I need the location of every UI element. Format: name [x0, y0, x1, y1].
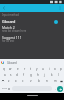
button[interactable]: q — [0, 66, 7, 72]
button[interactable]: u — [40, 66, 46, 72]
staticText: n — [46, 79, 48, 83]
staticText: c — [22, 79, 24, 83]
staticText: . — [55, 87, 56, 91]
staticText: s — [10, 73, 12, 77]
button[interactable]: p — [58, 66, 64, 72]
button[interactable]: l — [55, 72, 62, 78]
button[interactable]: f — [20, 72, 27, 78]
button[interactable]: i — [46, 66, 52, 72]
staticText: t — [30, 67, 32, 71]
staticText: Match 2 — [2, 25, 15, 30]
button[interactable]: c — [19, 78, 27, 84]
button[interactable]: s — [8, 72, 14, 78]
staticText: Input method — [2, 13, 19, 17]
button[interactable]: d — [14, 72, 20, 78]
staticText: o — [54, 67, 56, 71]
button[interactable]: g — [27, 72, 34, 78]
staticText: for all test — [2, 39, 15, 43]
button[interactable]: Suggest 111 — [0, 35, 64, 44]
button[interactable]: v — [27, 78, 35, 84]
staticText: b — [38, 79, 40, 83]
staticText: m — [54, 79, 57, 83]
staticText: w — [9, 67, 12, 71]
staticText: f — [23, 73, 25, 77]
button[interactable]: k — [48, 72, 55, 78]
button[interactable]: h — [34, 72, 41, 78]
button[interactable]: Backspace — [59, 78, 64, 84]
button[interactable]: Send — [57, 86, 63, 92]
button[interactable]: m — [51, 78, 59, 84]
button[interactable]: a — [2, 72, 8, 78]
button[interactable]: x — [12, 78, 19, 84]
staticText: g — [30, 73, 32, 77]
button[interactable]: r — [21, 66, 28, 72]
button[interactable]: Emoji — [7, 86, 11, 91]
staticText: new list shown here — [2, 29, 27, 33]
staticText: p — [60, 67, 62, 71]
staticText: i — [49, 67, 50, 71]
staticText: e — [17, 67, 19, 71]
button[interactable]: t — [28, 66, 34, 72]
staticText: z — [8, 79, 10, 83]
button[interactable]: More options — [57, 5, 63, 11]
button[interactable]: e — [14, 66, 21, 72]
staticText: h — [37, 73, 39, 77]
staticText: a — [4, 73, 6, 77]
staticText: x — [15, 79, 17, 83]
staticText: l — [58, 73, 59, 77]
button[interactable]: Period — [53, 86, 57, 91]
button[interactable]: Match 2 — [0, 25, 64, 34]
staticText: v — [30, 79, 32, 83]
staticText: u — [42, 67, 44, 71]
staticText: y — [36, 67, 38, 71]
button[interactable]: b — [35, 78, 43, 84]
button[interactable]: o — [52, 66, 58, 72]
button[interactable]: y — [34, 66, 40, 72]
staticText: j — [44, 73, 45, 77]
staticText: k — [51, 73, 53, 77]
button[interactable]: Symbols — [1, 86, 7, 91]
staticText: q — [3, 67, 5, 71]
button[interactable]: z — [5, 78, 12, 84]
staticText: Gboard — [2, 19, 16, 24]
button[interactable]: n — [43, 78, 51, 84]
button[interactable]: Back — [1, 5, 7, 11]
button[interactable]: Gboard — [0, 18, 64, 25]
staticText: ?123 — [2, 87, 7, 90]
staticText: Gboard — [7, 61, 17, 65]
button[interactable]: Shift — [0, 78, 5, 84]
staticText: r — [24, 67, 26, 71]
staticText: Suggest 111 — [2, 35, 22, 40]
staticText: d — [16, 73, 18, 77]
button[interactable]: j — [41, 72, 48, 78]
button[interactable]: w — [7, 66, 14, 72]
